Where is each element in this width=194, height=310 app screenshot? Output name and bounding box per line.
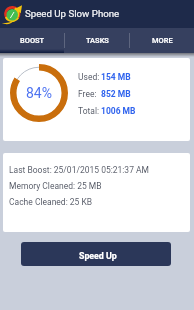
staticText: Speed Up Slow Phone xyxy=(25,8,120,19)
staticText: TASKS xyxy=(86,36,109,45)
button[interactable]: MORE xyxy=(130,28,194,53)
staticText: 1006 MB xyxy=(101,106,136,116)
staticText: Last Boost: 25/01/2015 05:21:37 AM xyxy=(9,165,149,175)
other: App icon xyxy=(4,5,22,23)
staticText: Free: xyxy=(78,89,97,99)
staticText: 84% xyxy=(26,85,52,101)
staticText: Used: xyxy=(78,72,100,82)
staticText: BOOST xyxy=(20,36,45,45)
staticText: Speed Up xyxy=(79,251,117,261)
staticText: Cache Cleaned: 25 KB xyxy=(9,197,93,207)
staticText: 852 MB xyxy=(101,89,131,99)
button[interactable]: BOOST xyxy=(0,28,64,53)
button[interactable]: TASKS xyxy=(65,28,129,53)
button[interactable]: Speed Up xyxy=(21,242,171,266)
staticText: Total: xyxy=(78,106,100,116)
staticText: MORE xyxy=(152,36,173,45)
staticText: Memory Cleaned: 25 MB xyxy=(9,181,102,191)
staticText: 154 MB xyxy=(101,72,131,82)
